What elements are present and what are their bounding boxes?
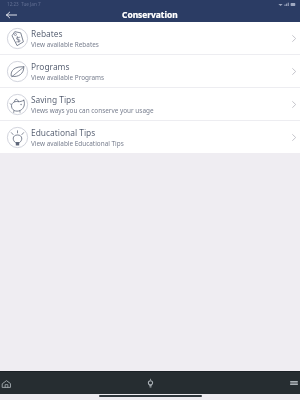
staticText: 12:23 Tue Jan 7 [7,1,41,7]
button[interactable]: Programs [0,55,300,87]
button[interactable]: Saving Tips [0,88,300,120]
staticText: Saving Tips [31,94,76,105]
staticText: Rebates [31,28,63,39]
button[interactable]: Home [0,371,26,394]
button[interactable]: Rebates [0,22,300,54]
staticText: View available Rebates [31,40,99,49]
staticText: Programs [31,61,70,72]
button[interactable]: Usage [137,371,163,394]
staticText: View available Programs [31,73,105,82]
staticText: View available Educational Tips [31,139,124,148]
button[interactable]: Educational Tips [0,121,300,153]
staticText: Conservation [122,9,178,20]
staticText: Views ways you can conserve your usage [31,106,154,115]
staticText: Educational Tips [31,127,96,138]
button[interactable]: Menu [274,371,300,394]
button[interactable]: Back [0,8,24,22]
